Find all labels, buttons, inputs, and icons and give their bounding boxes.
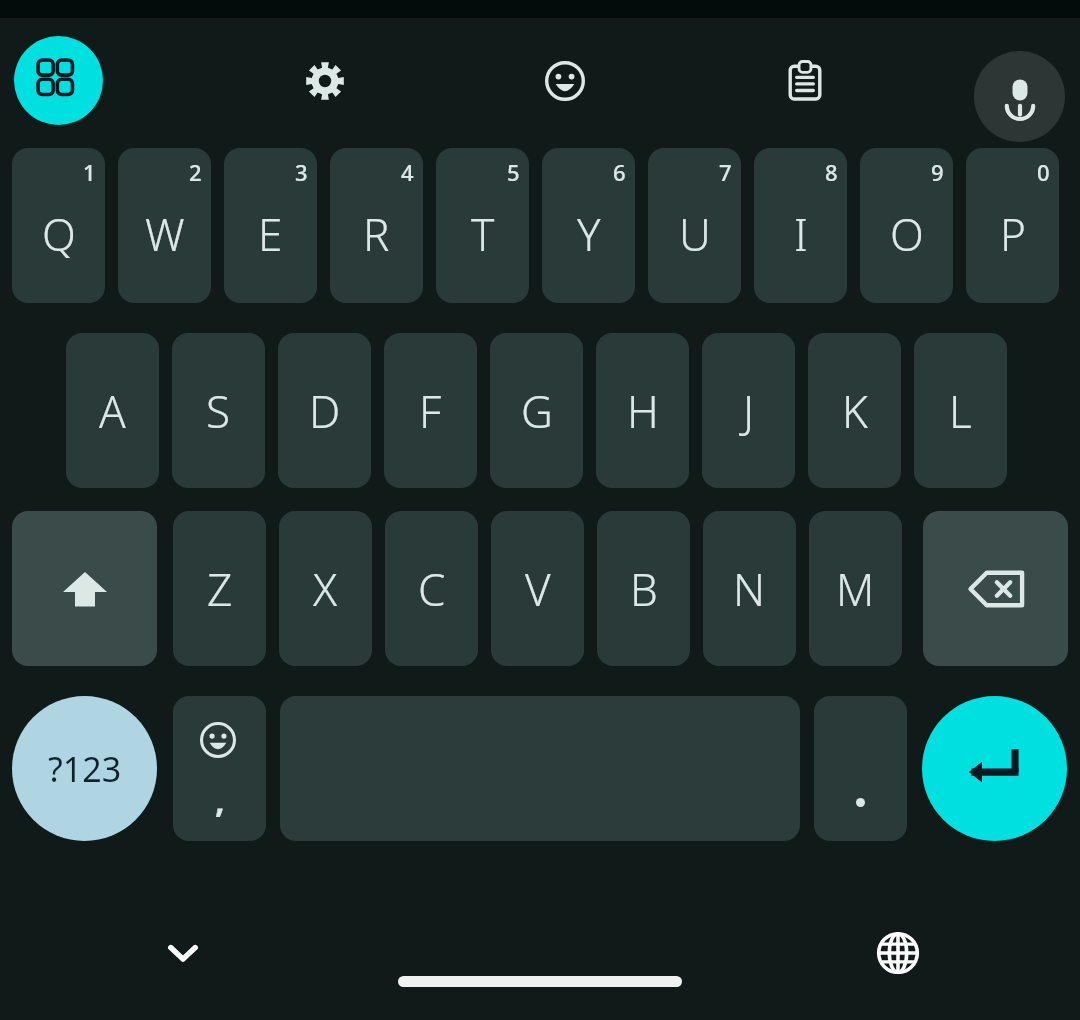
staticText: K <box>842 381 868 441</box>
button[interactable]: M <box>809 511 902 666</box>
button[interactable]: ?123 <box>12 696 157 841</box>
button[interactable]: Hide keyboard <box>145 915 221 991</box>
button[interactable]: K <box>808 333 901 488</box>
button[interactable]: Voice input <box>974 51 1065 142</box>
button[interactable]: Keyboard switcher <box>14 36 103 125</box>
staticText: L <box>949 381 972 441</box>
button[interactable]: Settings <box>280 36 369 125</box>
button[interactable]: X <box>279 511 372 666</box>
button[interactable]: 1 <box>12 148 105 303</box>
button[interactable]: Enter <box>922 696 1067 841</box>
staticText: J <box>743 381 755 441</box>
button[interactable]: Shift <box>12 511 157 666</box>
staticText: 5 <box>507 157 520 187</box>
staticText: P <box>1000 204 1026 264</box>
button[interactable]: Emoji <box>520 36 609 125</box>
staticText: 1 <box>83 157 96 187</box>
staticText: G <box>521 381 553 441</box>
staticText: W <box>145 204 185 264</box>
staticText: E <box>258 204 283 264</box>
button[interactable]: Backspace <box>923 511 1068 666</box>
button[interactable]: D <box>278 333 371 488</box>
staticText: 4 <box>401 157 414 187</box>
button[interactable] <box>814 696 907 841</box>
button[interactable]: C <box>385 511 478 666</box>
button[interactable]: 3 <box>224 148 317 303</box>
button[interactable]: 5 <box>436 148 529 303</box>
button[interactable]: V <box>491 511 584 666</box>
button[interactable]: L <box>914 333 1007 488</box>
button[interactable]: J <box>702 333 795 488</box>
button[interactable]: G <box>490 333 583 488</box>
staticText: S <box>206 381 231 441</box>
button[interactable]: B <box>597 511 690 666</box>
button[interactable]: 4 <box>330 148 423 303</box>
staticText: Z <box>207 559 233 619</box>
staticText: 6 <box>613 157 626 187</box>
staticText: 0 <box>1037 157 1050 187</box>
button[interactable]: 0 <box>966 148 1059 303</box>
staticText: N <box>733 559 766 619</box>
button[interactable]: Z <box>173 511 266 666</box>
staticText: R <box>363 204 390 264</box>
button[interactable]: A <box>66 333 159 488</box>
button[interactable]: N <box>703 511 796 666</box>
staticText: M <box>836 559 875 619</box>
staticText: 2 <box>189 157 202 187</box>
button[interactable]: Emoji and comma <box>173 696 266 841</box>
staticText: F <box>419 381 442 441</box>
button[interactable]: 6 <box>542 148 635 303</box>
button[interactable]: 7 <box>648 148 741 303</box>
staticText: D <box>309 381 341 441</box>
button[interactable]: H <box>596 333 689 488</box>
staticText: A <box>99 381 126 441</box>
staticText: Y <box>577 204 601 264</box>
staticText: ?123 <box>48 746 122 792</box>
staticText: C <box>418 559 446 619</box>
staticText: V <box>525 559 551 619</box>
staticText: B <box>630 559 658 619</box>
staticText: 8 <box>825 157 838 187</box>
staticText: T <box>471 204 495 264</box>
staticText: H <box>627 381 659 441</box>
button[interactable]: 8 <box>754 148 847 303</box>
button[interactable]: Change language <box>860 915 936 991</box>
staticText: , <box>215 777 225 823</box>
staticText: O <box>890 204 924 264</box>
staticText: I <box>794 204 808 264</box>
button[interactable]: F <box>384 333 477 488</box>
staticText: 7 <box>719 157 732 187</box>
button[interactable]: Clipboard <box>760 36 849 125</box>
button[interactable]: 9 <box>860 148 953 303</box>
staticText: 3 <box>295 157 308 187</box>
staticText: U <box>679 204 711 264</box>
staticText: Q <box>42 204 76 264</box>
staticText: X <box>313 559 338 619</box>
button[interactable]: 2 <box>118 148 211 303</box>
staticText: 9 <box>931 157 944 187</box>
button[interactable]: S <box>172 333 265 488</box>
